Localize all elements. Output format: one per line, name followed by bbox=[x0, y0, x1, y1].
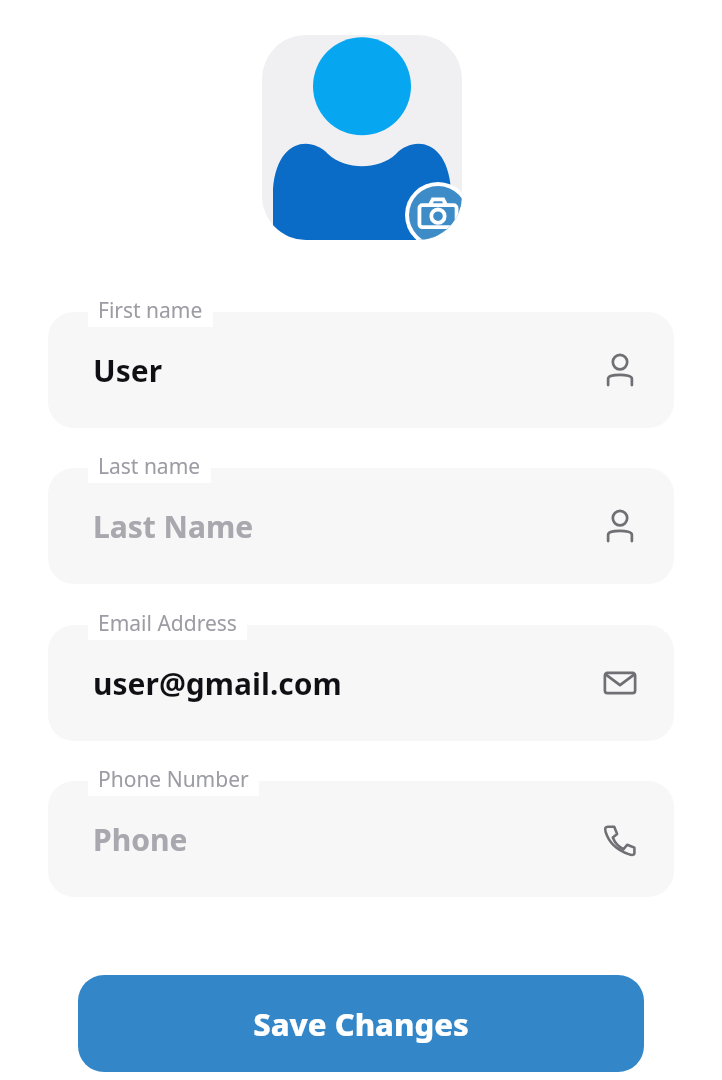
button[interactable]: User bbox=[48, 312, 674, 428]
staticText: Phone Number bbox=[98, 765, 249, 794]
staticText: Phone bbox=[93, 819, 188, 860]
staticText: Email Address bbox=[98, 609, 237, 638]
staticText: First name bbox=[98, 296, 203, 325]
button[interactable]: Profile photo bbox=[262, 35, 462, 240]
staticText: Last Name bbox=[93, 506, 254, 547]
staticText: Last name bbox=[98, 452, 201, 481]
button[interactable]: Last Name bbox=[48, 468, 674, 584]
button[interactable]: Save Changes bbox=[78, 975, 644, 1072]
button[interactable]: Change profile photo bbox=[409, 186, 462, 240]
button[interactable]: user@gmail.com bbox=[48, 625, 674, 741]
staticText: User bbox=[93, 350, 163, 391]
staticText: Save Changes bbox=[253, 1003, 469, 1045]
button[interactable]: Phone bbox=[48, 781, 674, 897]
staticText: user@gmail.com bbox=[93, 663, 342, 704]
